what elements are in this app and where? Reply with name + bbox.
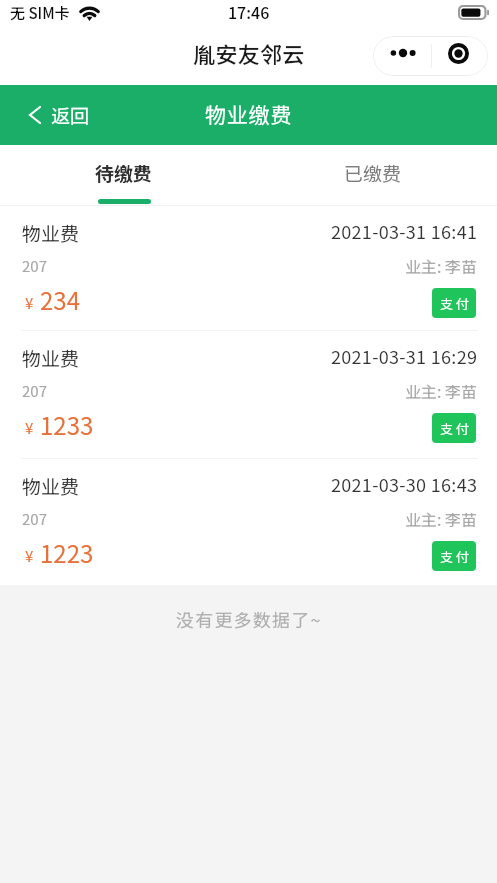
staticText: 业主: 李苗 xyxy=(405,379,478,402)
button[interactable]: 物业费 xyxy=(0,331,497,459)
staticText: ¥ xyxy=(25,545,34,567)
staticText: 支 付 xyxy=(440,419,469,438)
button[interactable]: 物业费 xyxy=(0,459,497,585)
staticText: 17:46 xyxy=(228,0,270,23)
button[interactable]: 返回 xyxy=(29,85,90,145)
staticText: 2021-03-31 16:41 xyxy=(331,218,478,244)
staticText: 返回 xyxy=(51,101,90,129)
button[interactable]: More options xyxy=(373,36,431,76)
button[interactable]: 物业费 xyxy=(0,206,497,331)
staticText: ¥ xyxy=(25,417,34,439)
button[interactable]: 支 付 xyxy=(432,541,476,571)
staticText: 支 付 xyxy=(440,547,469,566)
staticText: 已缴费 xyxy=(344,159,402,187)
staticText: 物业费 xyxy=(22,219,80,247)
staticText: 物业费 xyxy=(22,344,80,372)
staticText: 无 SIM卡 xyxy=(10,2,70,24)
staticText: 支 付 xyxy=(440,294,469,313)
button[interactable]: 支 付 xyxy=(432,413,476,443)
staticText: 2021-03-31 16:29 xyxy=(331,343,478,369)
button[interactable]: 支 付 xyxy=(432,288,476,318)
button[interactable]: 已缴费 xyxy=(248,145,497,206)
staticText: 物业费 xyxy=(22,472,80,500)
button[interactable]: Close mini program xyxy=(432,36,488,76)
staticText: 没有更多数据了~ xyxy=(176,606,322,632)
button[interactable]: 待缴费 xyxy=(0,145,248,206)
staticText: 2021-03-30 16:43 xyxy=(331,471,478,497)
staticText: 207 xyxy=(22,255,47,277)
staticText: 物业缴费 xyxy=(205,99,293,129)
staticText: ¥ xyxy=(25,292,34,314)
staticText: 业主: 李苗 xyxy=(405,254,478,277)
staticText: 1233 xyxy=(40,407,94,442)
staticText: 207 xyxy=(22,508,47,530)
staticText: 业主: 李苗 xyxy=(405,507,478,530)
staticText: 胤安友邻云 xyxy=(193,37,305,69)
staticText: 207 xyxy=(22,380,47,402)
staticText: 234 xyxy=(40,282,80,317)
staticText: 1223 xyxy=(40,535,94,570)
staticText: 待缴费 xyxy=(95,159,153,187)
